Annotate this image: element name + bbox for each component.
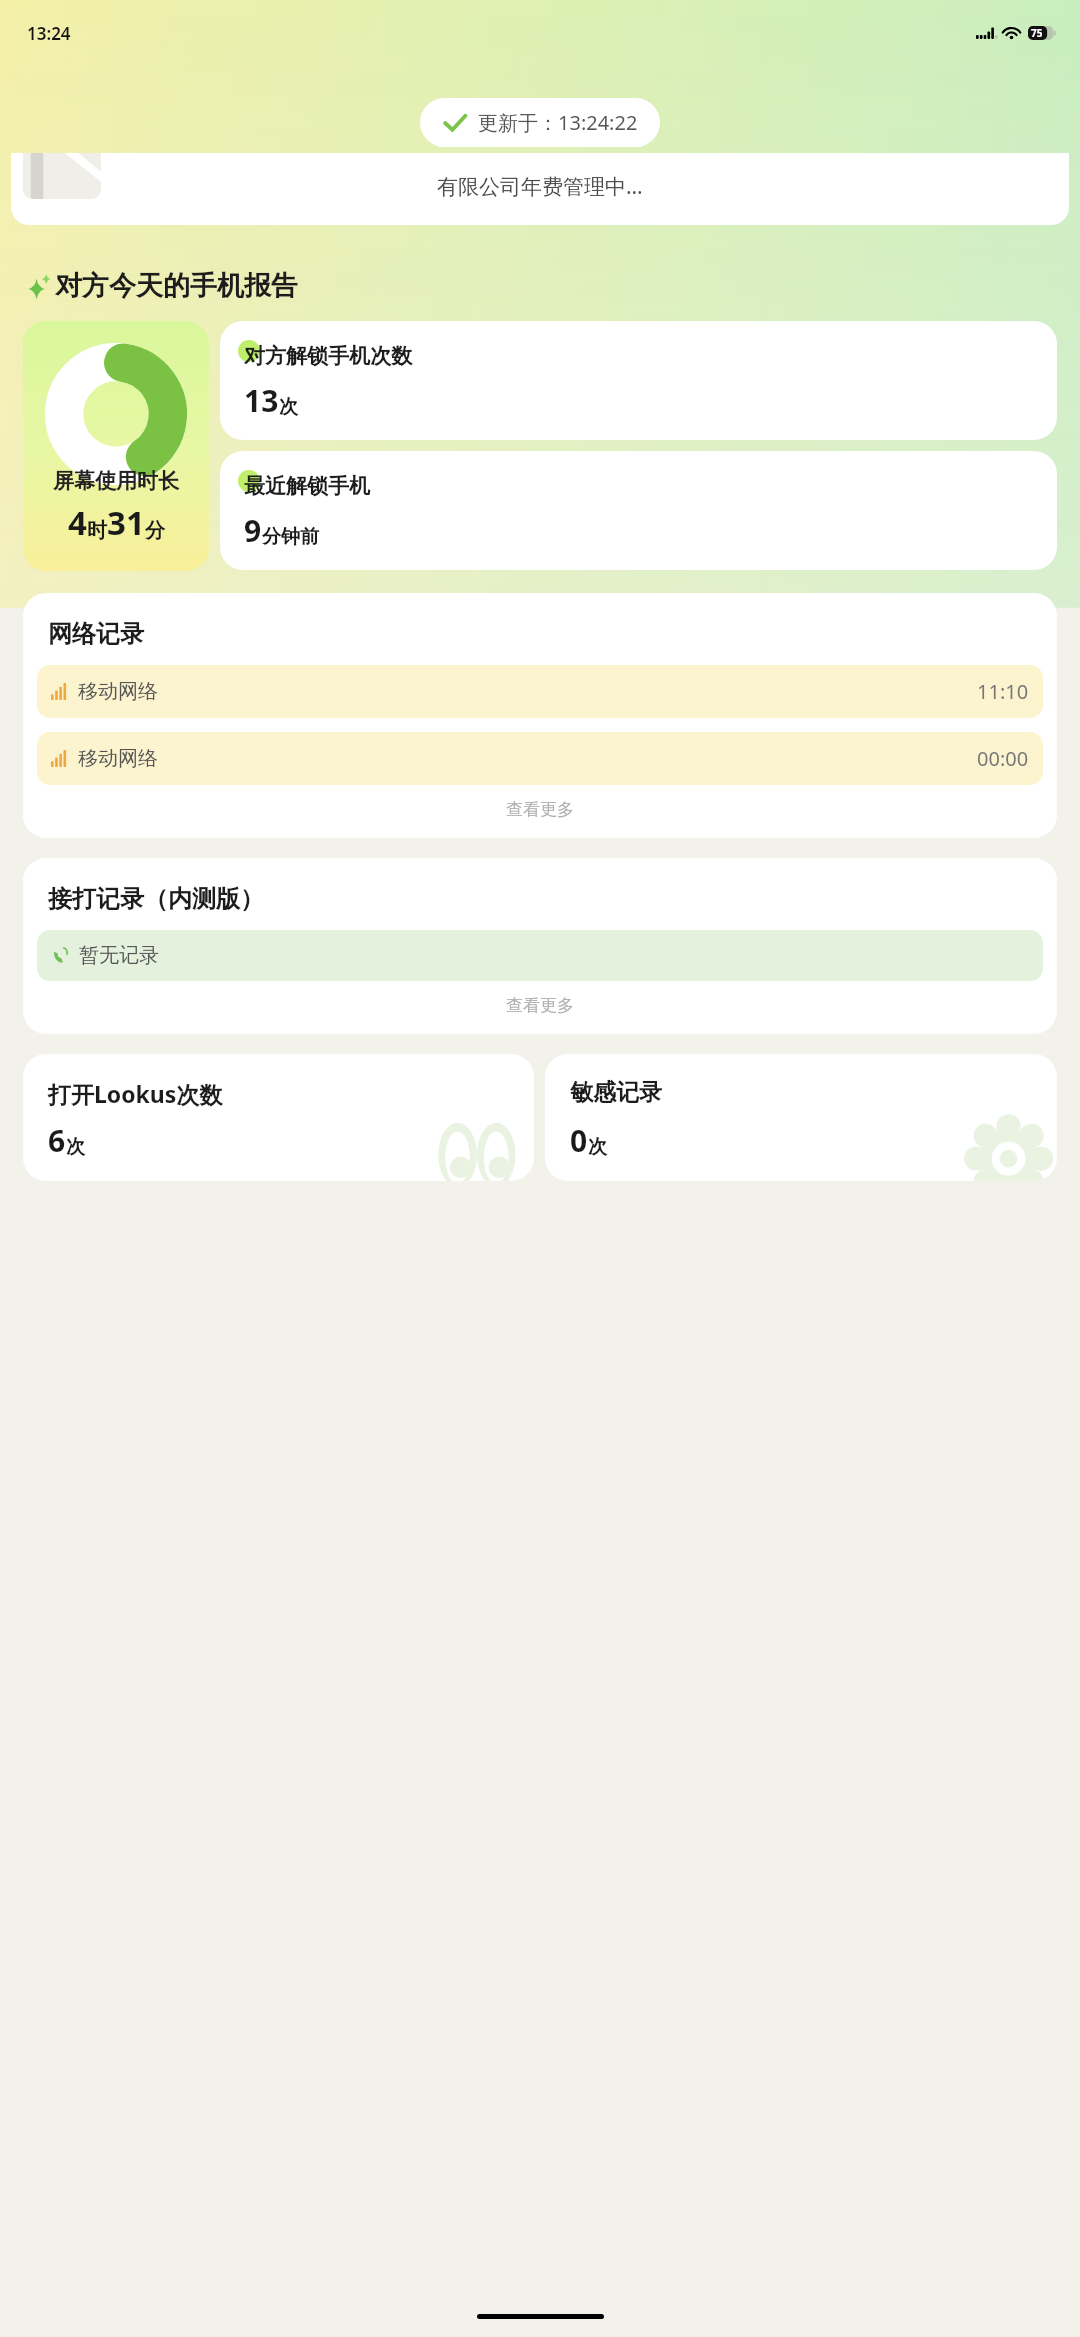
button[interactable]: 屏幕使用时长 [23, 321, 209, 571]
staticText: 敏感记录 [570, 1078, 662, 1107]
button[interactable]: 对方解锁手机次数 [220, 321, 1057, 440]
staticText: 31 [107, 500, 145, 545]
button[interactable]: 移动网络 [37, 732, 1043, 785]
staticText: 分 [145, 518, 165, 543]
staticText: 屏幕使用时长 [53, 468, 179, 494]
staticText: 次 [66, 1135, 85, 1159]
staticText: 6 [48, 1120, 66, 1161]
staticText: 最近解锁手机 [244, 473, 370, 499]
staticText: 对方今天的手机报告 [55, 269, 298, 303]
staticText: 0 [570, 1120, 588, 1161]
button[interactable]: 更新于：13:24:22 [420, 98, 660, 147]
button[interactable]: 最近解锁手机 [220, 451, 1057, 570]
staticText: 暂无记录 [79, 943, 159, 968]
staticText: 75 [1031, 26, 1043, 40]
button[interactable]: 打开Lookus次数 [23, 1054, 534, 1181]
staticText: 移动网络 [78, 679, 158, 704]
staticText: 接打记录（内测版） [48, 884, 264, 914]
staticText: 分钟前 [262, 525, 319, 549]
button[interactable]: 查看更多 [23, 991, 1057, 1020]
staticText: 次 [279, 395, 298, 419]
staticText: 移动网络 [78, 746, 158, 771]
button[interactable]: 移动网络 [37, 665, 1043, 718]
button[interactable]: 暂无记录 [37, 930, 1043, 981]
button[interactable]: 查看更多 [23, 795, 1057, 824]
staticText: 有限公司年费管理中… [437, 172, 643, 201]
staticText: 13:24 [27, 22, 71, 45]
staticText: 更新于：13:24:22 [478, 109, 638, 136]
staticText: 网络记录 [48, 619, 144, 649]
staticText: 9 [244, 510, 262, 551]
staticText: 打开Lookus次数 [48, 1078, 223, 1109]
staticText: 4 [68, 500, 87, 545]
staticText: 11:10 [977, 678, 1029, 705]
staticText: 次 [588, 1135, 607, 1159]
button[interactable]: 敏感记录 [545, 1054, 1057, 1181]
button[interactable]: 有限公司年费管理中… [11, 153, 1069, 225]
staticText: 13 [244, 380, 279, 421]
staticText: 对方解锁手机次数 [244, 343, 412, 369]
staticText: 00:00 [977, 745, 1029, 772]
staticText: 时 [87, 518, 107, 543]
